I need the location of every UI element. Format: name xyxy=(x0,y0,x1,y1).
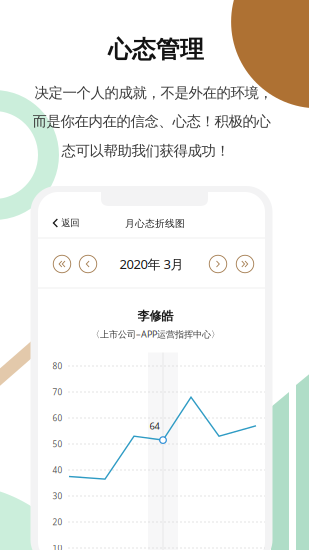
staticText: 20 xyxy=(52,516,62,528)
staticText: 态可以帮助我们获得成功！ xyxy=(61,142,229,160)
staticText: 40 xyxy=(52,464,62,476)
staticText: 50 xyxy=(52,438,62,450)
button[interactable]: 下一月 xyxy=(209,255,227,273)
staticText: 心态管理 xyxy=(108,35,204,64)
staticText: 60 xyxy=(52,412,62,424)
button[interactable]: 下一年 xyxy=(236,255,254,273)
staticText: 80 xyxy=(52,360,62,372)
staticText: 返回 xyxy=(61,217,79,229)
staticText: 70 xyxy=(52,386,62,398)
staticText: 64 xyxy=(149,420,159,432)
button[interactable]: 返回 xyxy=(49,212,83,234)
staticText: 决定一个人的成就，不是外在的环境， xyxy=(34,84,272,102)
button[interactable]: 上一年 xyxy=(53,255,71,273)
button[interactable]: 上一月 xyxy=(79,255,97,273)
staticText: 〈上市公司–APP运营指挥中心〉 xyxy=(91,328,220,340)
staticText: 30 xyxy=(52,490,62,502)
staticText: 李修皓 xyxy=(137,308,173,323)
staticText: 月心态折线图 xyxy=(125,217,185,230)
staticText: 2020年 3月 xyxy=(119,255,183,273)
staticText: 而是你在内在的信念、心态！积极的心 xyxy=(32,112,270,130)
staticText: 10 xyxy=(52,542,62,550)
